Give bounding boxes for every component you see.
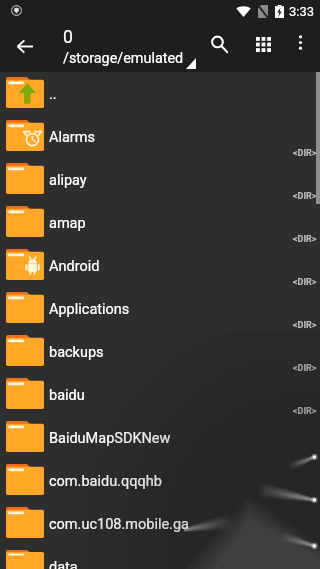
staticText: amap: [49, 215, 86, 232]
staticText: baidu: [49, 387, 85, 404]
button[interactable]: Search: [197, 22, 241, 66]
staticText: BaiduMapSDKNew: [49, 430, 171, 447]
button[interactable]: com.baidu.qqqhb: [0, 459, 320, 502]
staticText: <DIR>: [293, 277, 317, 288]
button[interactable]: BaiduMapSDKNew: [0, 416, 320, 459]
staticText: Alarms: [49, 129, 95, 146]
button[interactable]: Back: [1, 22, 49, 70]
staticText: com.baidu.qqqhb: [49, 473, 162, 490]
staticText: alipay: [49, 172, 87, 189]
staticText: <DIR>: [293, 148, 317, 159]
button[interactable]: Android: [0, 244, 320, 287]
staticText: backups: [49, 344, 104, 361]
staticText: 0: [63, 27, 73, 48]
staticText: Applications: [49, 301, 130, 318]
button[interactable]: Alarms: [0, 115, 320, 158]
staticText: com.uc108.mobile.ga: [49, 516, 189, 533]
staticText: <DIR>: [293, 191, 317, 202]
button[interactable]: More options: [280, 22, 320, 62]
button[interactable]: ..: [0, 72, 320, 115]
staticText: <DIR>: [293, 320, 317, 331]
staticText: 3:33: [289, 4, 315, 19]
button[interactable]: data: [0, 545, 320, 569]
staticText: <DIR>: [293, 363, 317, 374]
button[interactable]: com.uc108.mobile.ga: [0, 502, 320, 545]
button[interactable]: alipay: [0, 158, 320, 201]
staticText: data: [49, 559, 78, 569]
staticText: ..: [49, 86, 57, 103]
button[interactable]: 0: [63, 27, 184, 65]
staticText: /storage/emulated: [63, 50, 184, 67]
staticText: <DIR>: [293, 406, 317, 417]
staticText: Android: [49, 258, 100, 275]
button[interactable]: baidu: [0, 373, 320, 416]
staticText: <DIR>: [293, 234, 317, 245]
button[interactable]: Applications: [0, 287, 320, 330]
button[interactable]: amap: [0, 201, 320, 244]
button[interactable]: backups: [0, 330, 320, 373]
button[interactable]: View mode: [241, 22, 285, 66]
